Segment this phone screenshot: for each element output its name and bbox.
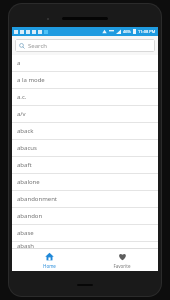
staticText: a.c. bbox=[17, 93, 27, 101]
button[interactable]: abase bbox=[12, 225, 158, 242]
staticText: a la mode bbox=[17, 76, 45, 84]
button[interactable]: abaft bbox=[12, 157, 158, 174]
staticText: aback bbox=[17, 127, 34, 135]
button[interactable]: abalone bbox=[12, 174, 158, 191]
button[interactable]: abandonment bbox=[12, 191, 158, 208]
button[interactable]: Home bbox=[29, 249, 69, 271]
staticText: abaft bbox=[17, 161, 32, 169]
button[interactable]: abacus bbox=[12, 140, 158, 157]
button[interactable]: a la mode bbox=[12, 72, 158, 89]
staticText: Search bbox=[28, 42, 47, 50]
staticText: a/v bbox=[17, 110, 26, 118]
staticText: Home bbox=[43, 263, 56, 269]
button[interactable]: aback bbox=[12, 123, 158, 140]
staticText: abalone bbox=[17, 178, 40, 186]
button[interactable]: a.c. bbox=[12, 89, 158, 106]
button[interactable]: Favorite bbox=[102, 249, 142, 271]
staticText: abandon bbox=[17, 212, 43, 220]
button[interactable]: abandon bbox=[12, 208, 158, 225]
button[interactable]: a/v bbox=[12, 106, 158, 123]
staticText: Favorite bbox=[113, 263, 131, 269]
staticText: 46% bbox=[123, 29, 131, 34]
button[interactable]: a bbox=[12, 55, 158, 72]
staticText: abash bbox=[17, 242, 35, 248]
staticText: 11:08 PM bbox=[138, 29, 156, 34]
button[interactable]: Search bbox=[15, 39, 155, 52]
staticText: abacus bbox=[17, 144, 37, 152]
button[interactable]: abash bbox=[12, 242, 158, 248]
staticText: a bbox=[17, 59, 21, 67]
staticText: abase bbox=[17, 229, 34, 237]
staticText: abandonment bbox=[17, 195, 58, 203]
